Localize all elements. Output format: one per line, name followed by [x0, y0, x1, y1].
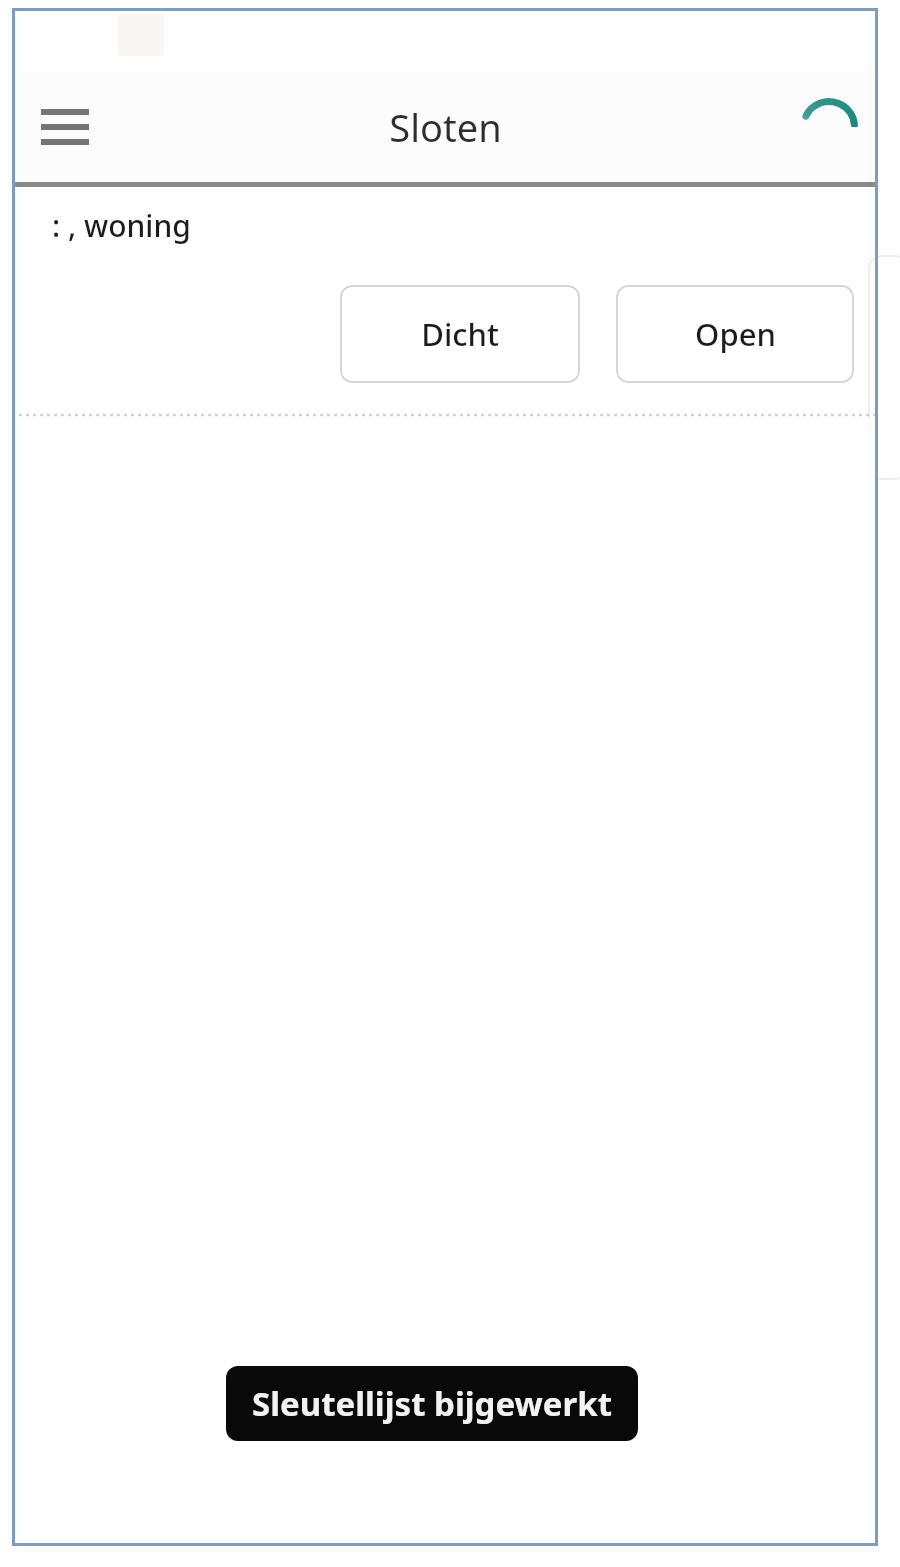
staticText: : , woning — [52, 205, 191, 246]
staticText: Open — [695, 313, 776, 355]
other: Loading — [786, 84, 872, 170]
button[interactable]: Open — [616, 285, 854, 383]
staticText: Sleutellijst bijgewerkt — [252, 1381, 612, 1426]
button[interactable]: Sleutellijst bijgewerkt — [226, 1366, 638, 1441]
button[interactable]: Menu — [26, 88, 104, 166]
button[interactable]: Dicht — [340, 285, 580, 383]
staticText: Dicht — [421, 313, 499, 355]
staticText: Sloten — [389, 101, 502, 153]
